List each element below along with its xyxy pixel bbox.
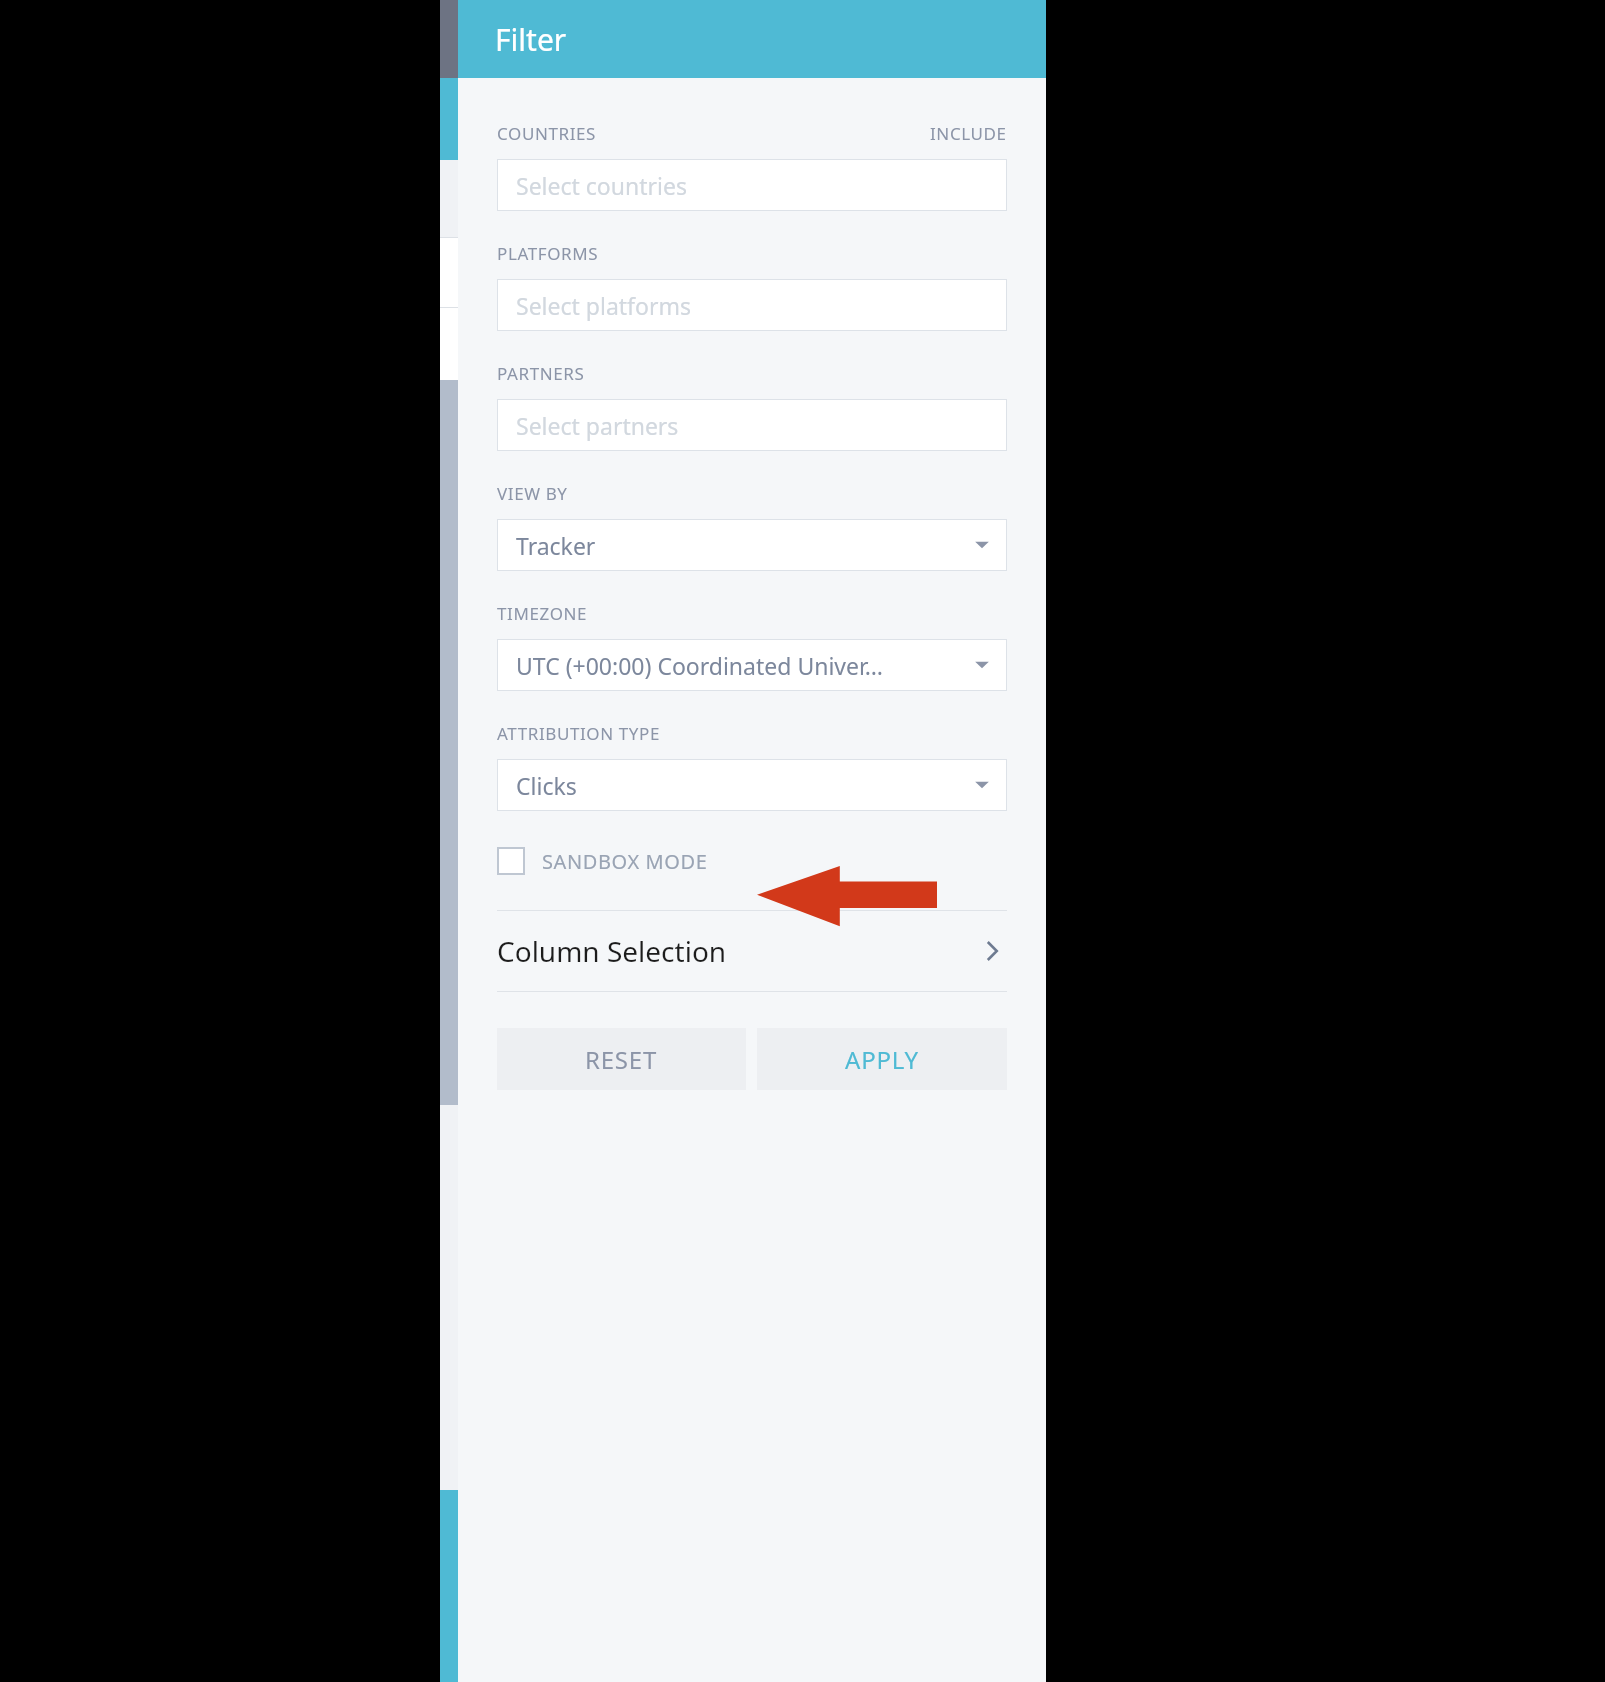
- staticText: Select countries: [516, 170, 687, 201]
- staticText: RESET: [585, 1043, 658, 1076]
- button[interactable]: Select partners: [497, 399, 1007, 451]
- staticText: SANDBOX MODE: [542, 848, 708, 875]
- staticText: Tracker: [516, 530, 596, 561]
- staticText: VIEW BY: [497, 482, 568, 505]
- button[interactable]: SANDBOX MODE: [497, 837, 1007, 885]
- button[interactable]: INCLUDE: [930, 122, 1007, 145]
- staticText: COUNTRIES: [497, 122, 597, 145]
- staticText: UTC (+00:00) Coordinated Univer…: [516, 650, 884, 681]
- staticText: APPLY: [845, 1043, 919, 1076]
- staticText: PLATFORMS: [497, 242, 599, 265]
- button[interactable]: Clicks: [497, 759, 1007, 811]
- staticText: Column Selection: [497, 932, 727, 970]
- button[interactable]: Column Selection: [497, 911, 1007, 991]
- staticText: TIMEZONE: [497, 602, 588, 625]
- staticText: Select partners: [516, 410, 679, 441]
- button[interactable]: Select platforms: [497, 279, 1007, 331]
- button[interactable]: RESET: [497, 1028, 746, 1090]
- staticText: Filter: [495, 19, 567, 60]
- staticText: PARTNERS: [497, 362, 585, 385]
- button[interactable]: APPLY: [757, 1028, 1007, 1090]
- staticText: INCLUDE: [930, 122, 1007, 145]
- button[interactable]: Tracker: [497, 519, 1007, 571]
- button[interactable]: UTC (+00:00) Coordinated Univer…: [497, 639, 1007, 691]
- staticText: Select platforms: [516, 290, 691, 321]
- staticText: ATTRIBUTION TYPE: [497, 722, 660, 745]
- staticText: Clicks: [516, 770, 577, 801]
- button[interactable]: Select countries: [497, 159, 1007, 211]
